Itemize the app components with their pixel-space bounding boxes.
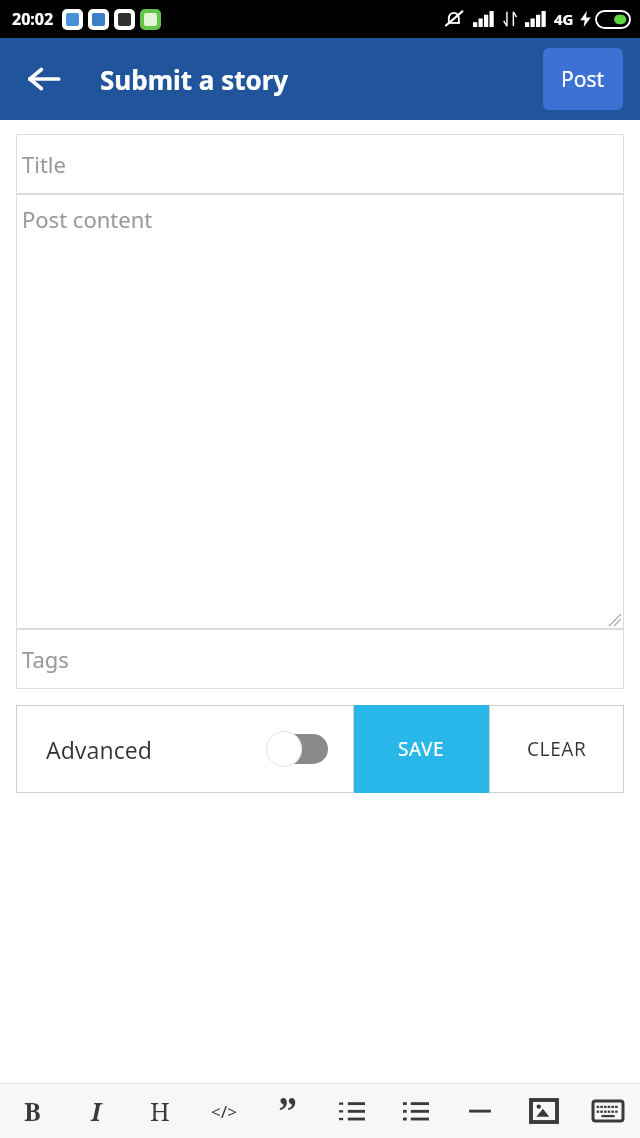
staticText: </> [211,1100,237,1123]
button[interactable]: Back [14,49,74,109]
button[interactable]: Code [192,1084,256,1138]
staticText: SAVE [398,736,445,762]
button[interactable]: Advanced [16,705,354,793]
staticText: Post content [22,204,153,234]
staticText: CLEAR [527,736,587,762]
button[interactable]: Keyboard [576,1084,640,1138]
button[interactable]: Numbered list [320,1084,384,1138]
staticText: Advanced [46,734,152,765]
button[interactable]: Post content [16,194,624,629]
staticText: Post [561,65,605,94]
staticText: 4G [554,9,574,29]
button[interactable]: Tags [16,629,624,689]
button[interactable]: Insert image [512,1084,576,1138]
button[interactable]: Bulleted list [384,1084,448,1138]
button[interactable]: Italic [64,1084,128,1138]
staticText: Submit a story [100,62,289,97]
staticText: I [91,1094,102,1128]
button[interactable]: Heading [128,1084,192,1138]
button[interactable]: SAVE [354,705,489,793]
staticText: H [150,1094,170,1128]
staticText: Title [22,149,66,179]
button[interactable] [266,729,328,769]
staticText: 20:02 [12,8,54,30]
button[interactable]: Bold [0,1084,64,1138]
button[interactable]: Quote [256,1084,320,1138]
button[interactable]: Title [16,134,624,194]
button[interactable]: CLEAR [489,705,624,793]
button[interactable]: Horizontal rule [448,1084,512,1138]
staticText: Tags [22,644,69,674]
staticText: B [24,1094,41,1128]
staticText: ” [278,1084,298,1138]
button[interactable]: Post [543,48,623,110]
